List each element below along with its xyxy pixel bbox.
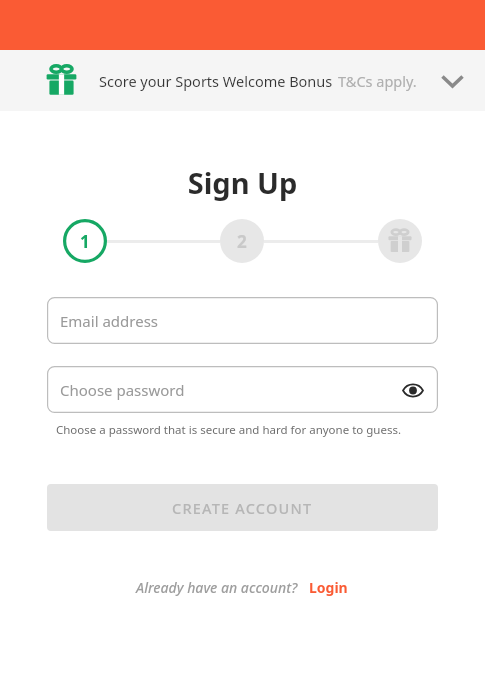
staticText: Already have an account?: [136, 578, 298, 597]
staticText: Choose password: [60, 380, 185, 400]
staticText: 1: [80, 230, 90, 253]
button[interactable]: Show password: [398, 375, 428, 405]
button[interactable]: Expand bonus details: [437, 66, 467, 96]
staticText: Login: [309, 578, 348, 597]
button[interactable]: CREATE ACCOUNT: [47, 484, 438, 531]
staticText: T&Cs apply.: [338, 71, 417, 91]
button[interactable]: Choose password: [47, 366, 438, 413]
button[interactable]: Email address: [47, 297, 438, 344]
staticText: Score your Sports Welcome Bonus: [99, 71, 333, 91]
staticText: CREATE ACCOUNT: [172, 498, 313, 518]
staticText: 2: [237, 230, 247, 253]
staticText: Choose a password that is secure and har…: [56, 422, 402, 438]
staticText: Sign Up: [0, 163, 485, 202]
button[interactable]: Score your Sports Welcome Bonus: [0, 50, 485, 111]
staticText: Email address: [60, 311, 159, 331]
button[interactable]: Login: [307, 576, 350, 599]
